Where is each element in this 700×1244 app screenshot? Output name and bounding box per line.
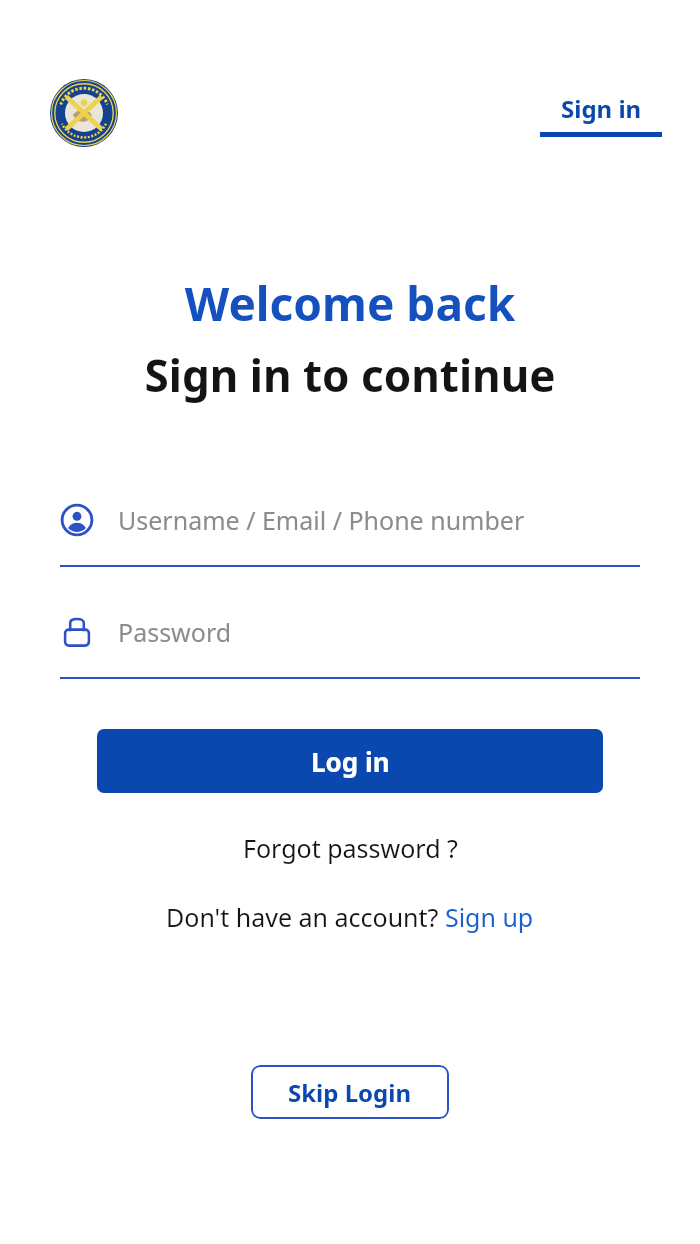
button[interactable]: Skip Login bbox=[251, 1065, 449, 1119]
button[interactable]: Don't have an account? Sign up bbox=[156, 895, 544, 939]
button[interactable]: Cyprus Cricket Foundation logo bbox=[50, 79, 118, 147]
staticText: Password bbox=[118, 615, 232, 649]
staticText: Skip Login bbox=[288, 1076, 412, 1109]
button[interactable]: Password bbox=[60, 607, 640, 679]
other: Password bbox=[60, 615, 94, 649]
staticText: Sign in bbox=[561, 92, 642, 125]
staticText: Log in bbox=[311, 744, 390, 779]
button[interactable]: Forgot password ? bbox=[233, 826, 468, 870]
button[interactable]: Account bbox=[60, 495, 640, 567]
button[interactable]: Sign in bbox=[540, 92, 662, 137]
staticText: Forgot password ? bbox=[243, 831, 458, 865]
staticText: Sign in to continue bbox=[0, 345, 700, 405]
button[interactable]: Log in bbox=[97, 729, 603, 793]
staticText: Username / Email / Phone number bbox=[118, 503, 525, 537]
staticText: Welcome back bbox=[0, 272, 700, 335]
other: Account bbox=[60, 503, 94, 537]
staticText: Don't have an account? Sign up bbox=[166, 900, 534, 934]
